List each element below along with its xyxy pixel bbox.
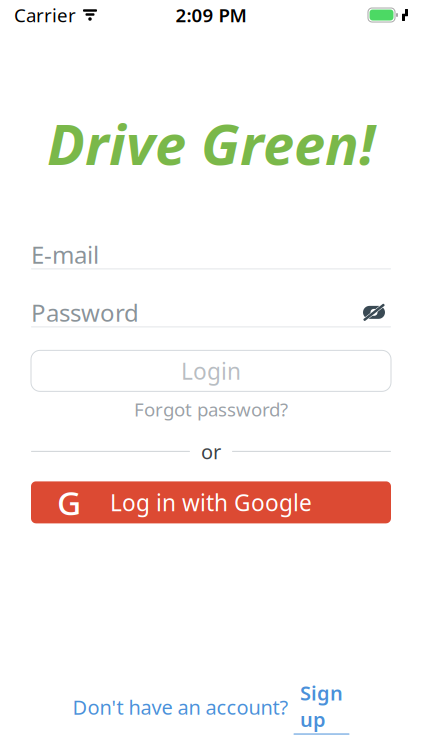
staticText: Drive Green! (47, 106, 375, 180)
staticText: Don't have an account? (72, 694, 288, 720)
staticText: 2:09 PM (175, 3, 246, 27)
button[interactable]: Show password (357, 299, 391, 325)
staticText: or (201, 438, 221, 465)
staticText: Forgot password? (134, 397, 288, 422)
staticText: E-mail (31, 238, 99, 270)
button[interactable]: Log in with Google (31, 481, 391, 523)
button[interactable]: Login (31, 350, 391, 391)
button[interactable]: Don't have an account? (31, 692, 391, 722)
staticText: Carrier (14, 3, 76, 27)
staticText: G (57, 480, 81, 524)
staticText: Sign up (300, 679, 343, 732)
staticText: Password (31, 296, 139, 328)
button[interactable]: Forgot password? (31, 396, 391, 422)
staticText: Login (181, 356, 241, 386)
staticText: Log in with Google (110, 487, 312, 517)
